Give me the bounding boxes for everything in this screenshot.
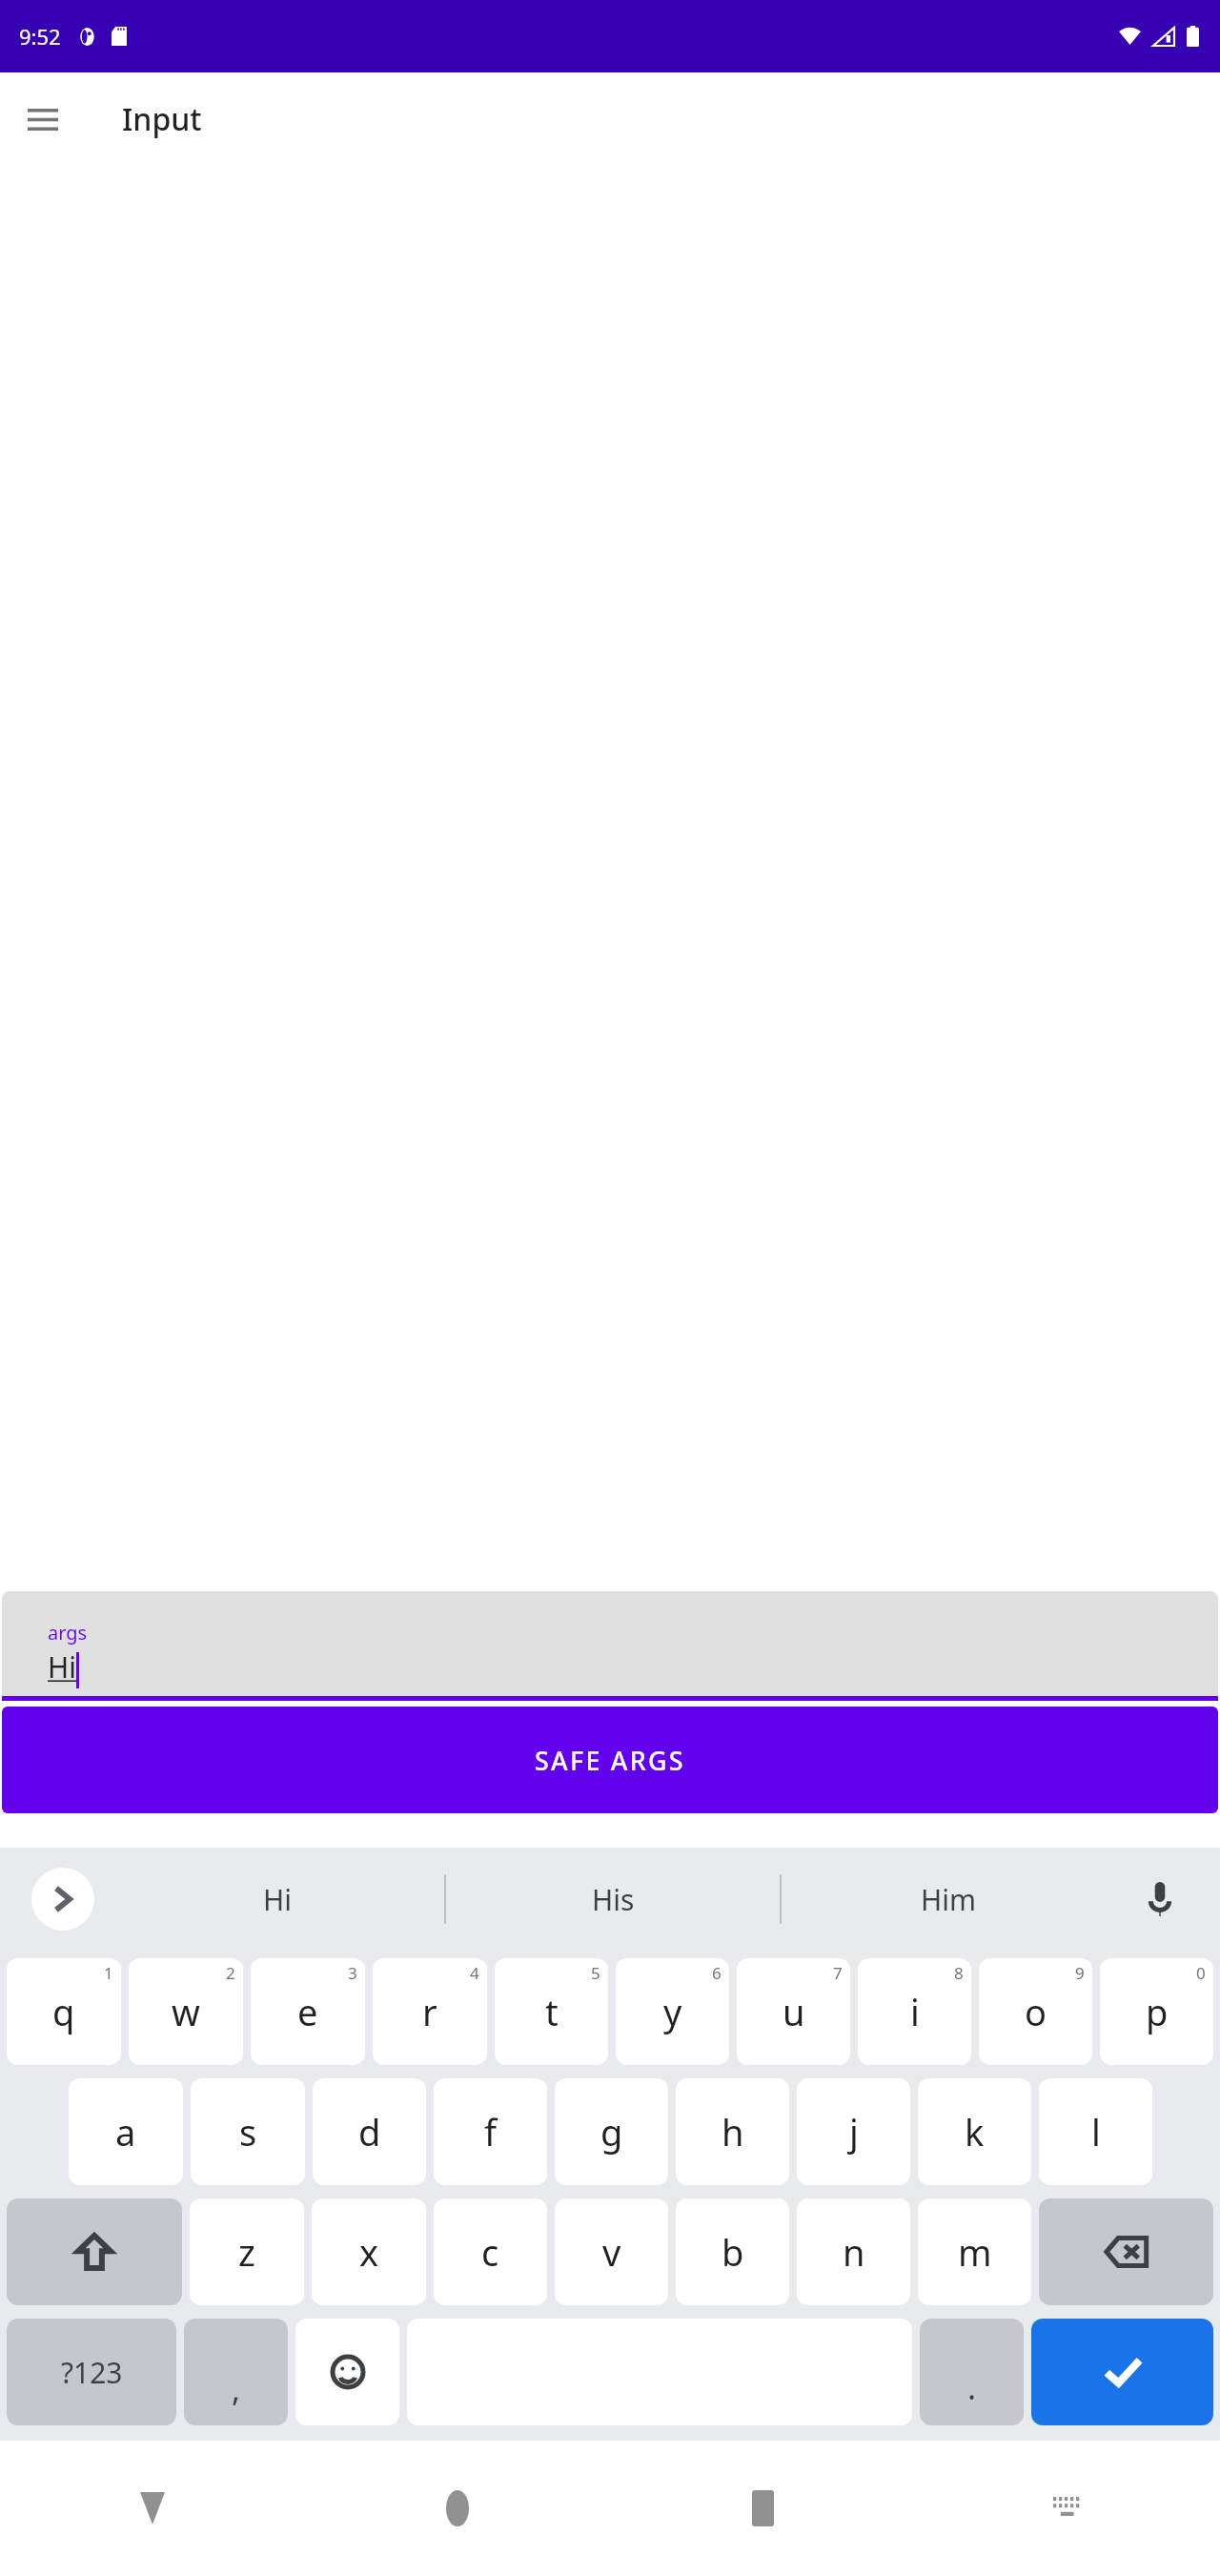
staticText: 5 xyxy=(591,1962,600,1984)
button[interactable]: y xyxy=(616,1958,729,2065)
staticText: args xyxy=(48,1620,88,1646)
button[interactable]: n xyxy=(797,2198,910,2305)
button[interactable]: More suggestions xyxy=(31,1868,94,1931)
staticText: y xyxy=(663,1987,682,2036)
button[interactable]: o xyxy=(979,1958,1092,2065)
staticText: i xyxy=(910,1987,920,2036)
staticText: , xyxy=(232,2367,241,2411)
button[interactable]: a xyxy=(69,2078,183,2185)
button[interactable]: h xyxy=(676,2078,789,2185)
staticText: v xyxy=(602,2227,621,2277)
staticText: n xyxy=(843,2227,865,2277)
button[interactable]: Open navigation menu xyxy=(13,90,72,149)
button[interactable]: v xyxy=(555,2198,668,2305)
staticText: 3 xyxy=(348,1962,357,1984)
staticText: Hi xyxy=(263,1880,292,1919)
staticText: p xyxy=(1146,1987,1169,2036)
button[interactable]: s xyxy=(191,2078,305,2185)
staticText: 8 xyxy=(954,1962,964,1984)
button[interactable]: i xyxy=(858,1958,971,2065)
button[interactable]: x xyxy=(312,2198,426,2305)
button[interactable]: l xyxy=(1039,2078,1152,2185)
staticText: h xyxy=(722,2107,744,2157)
button[interactable]: w xyxy=(129,1958,243,2065)
button[interactable]: g xyxy=(555,2078,668,2185)
staticText: r xyxy=(422,1987,437,2036)
staticText: o xyxy=(1025,1987,1047,2036)
button[interactable]: Switch keyboard xyxy=(915,2441,1220,2576)
button[interactable]: q xyxy=(7,1958,121,2065)
staticText: His xyxy=(592,1880,635,1919)
staticText: 6 xyxy=(712,1962,722,1984)
staticText: c xyxy=(481,2227,499,2277)
staticText: x xyxy=(359,2227,379,2277)
button[interactable]: c xyxy=(434,2198,547,2305)
staticText: m xyxy=(958,2227,992,2277)
button[interactable]: Back xyxy=(0,2441,305,2576)
button[interactable]: Recent apps xyxy=(610,2441,915,2576)
staticText: l xyxy=(1091,2107,1101,2157)
staticText: 4 xyxy=(470,1962,479,1984)
staticText: 7 xyxy=(833,1962,843,1984)
button[interactable]: u xyxy=(737,1958,850,2065)
button[interactable]: ?123 xyxy=(7,2319,176,2425)
staticText: . xyxy=(967,2365,977,2409)
button[interactable]: Backspace xyxy=(1039,2198,1213,2305)
staticText: q xyxy=(52,1987,75,2036)
button[interactable]: j xyxy=(797,2078,910,2185)
staticText: Input xyxy=(122,98,202,140)
staticText: u xyxy=(783,1987,805,2036)
button[interactable]: b xyxy=(676,2198,789,2305)
staticText: 0 xyxy=(1196,1962,1206,1984)
staticText: 2 xyxy=(226,1962,235,1984)
button[interactable]: f xyxy=(434,2078,547,2185)
button[interactable]: Home xyxy=(305,2441,610,2576)
staticText: w xyxy=(172,1987,200,2036)
button[interactable]: Hi xyxy=(111,1848,444,1951)
button[interactable]: Shift xyxy=(7,2198,182,2305)
staticText: 9 xyxy=(1075,1962,1085,1984)
staticText: Hi xyxy=(48,1647,76,1687)
staticText: 9:52 xyxy=(19,22,61,51)
staticText: j xyxy=(849,2107,859,2157)
button[interactable]: Him xyxy=(782,1848,1115,1951)
staticText: f xyxy=(484,2107,498,2157)
button[interactable]: args xyxy=(2,1591,1218,1701)
staticText: 1 xyxy=(104,1962,113,1984)
button[interactable]: Emoji xyxy=(295,2319,399,2425)
staticText: e xyxy=(297,1987,318,2036)
staticText: SAFE ARGS xyxy=(535,1743,685,1778)
button[interactable]: t xyxy=(495,1958,608,2065)
button[interactable]: Enter xyxy=(1031,2319,1213,2425)
staticText: z xyxy=(238,2227,255,2277)
button[interactable]: r xyxy=(373,1958,487,2065)
button[interactable]: d xyxy=(313,2078,426,2185)
staticText: b xyxy=(722,2227,744,2277)
button[interactable]: Voice input xyxy=(1128,1868,1191,1931)
staticText: g xyxy=(600,2107,623,2157)
button[interactable]: z xyxy=(190,2198,304,2305)
button[interactable]: SAFE ARGS xyxy=(2,1707,1218,1813)
staticText: s xyxy=(239,2107,257,2157)
staticText: t xyxy=(545,1987,559,2036)
button[interactable]: k xyxy=(918,2078,1031,2185)
staticText: k xyxy=(965,2107,985,2157)
button[interactable]: p xyxy=(1100,1958,1213,2065)
button[interactable]: His xyxy=(446,1848,780,1951)
button[interactable]: e xyxy=(251,1958,365,2065)
button[interactable]: m xyxy=(918,2198,1031,2305)
staticText: ?123 xyxy=(61,2353,123,2392)
staticText: a xyxy=(115,2107,136,2157)
button[interactable]: . xyxy=(920,2319,1024,2425)
button[interactable]: , xyxy=(184,2319,288,2425)
staticText: Him xyxy=(921,1880,977,1919)
staticText: d xyxy=(358,2107,381,2157)
